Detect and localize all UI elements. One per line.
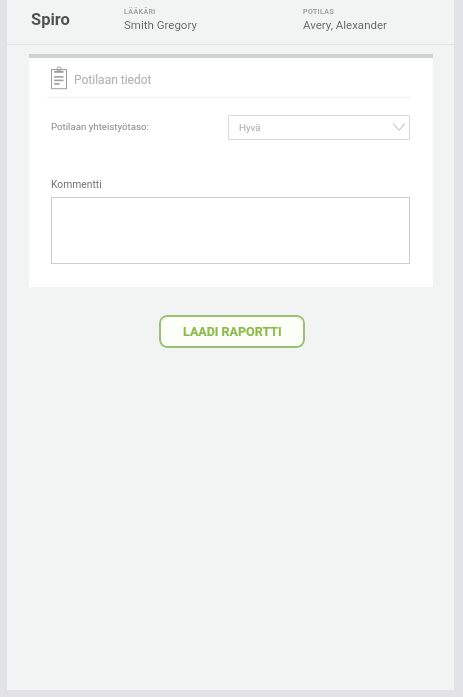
- button[interactable]: Avery, Alexander: [303, 18, 387, 31]
- staticText: LAADI RAPORTTI: [183, 324, 282, 339]
- button[interactable]: LÄÄKÄRI: [124, 8, 156, 16]
- button[interactable]: [51, 197, 410, 264]
- button[interactable]: Smith Gregory: [124, 18, 197, 31]
- staticText: Potilaan tiedot: [74, 73, 152, 87]
- staticText: Hyvä: [239, 122, 261, 133]
- other: Expand dropdown: [391, 119, 407, 135]
- button[interactable]: Hyvä: [228, 115, 410, 140]
- staticText: Kommentti: [51, 178, 102, 190]
- other: Patient details: [50, 65, 68, 89]
- button[interactable]: LAADI RAPORTTI: [159, 315, 305, 348]
- staticText: Avery, Alexander: [303, 18, 387, 31]
- staticText: Spiro: [31, 10, 70, 29]
- staticText: POTILAS: [303, 8, 335, 16]
- button[interactable]: POTILAS: [303, 8, 335, 16]
- button[interactable]: Spiro: [31, 10, 70, 29]
- staticText: Potilaan yhteistyötaso:: [51, 121, 149, 132]
- staticText: LÄÄKÄRI: [124, 8, 156, 16]
- staticText: Smith Gregory: [124, 18, 197, 31]
